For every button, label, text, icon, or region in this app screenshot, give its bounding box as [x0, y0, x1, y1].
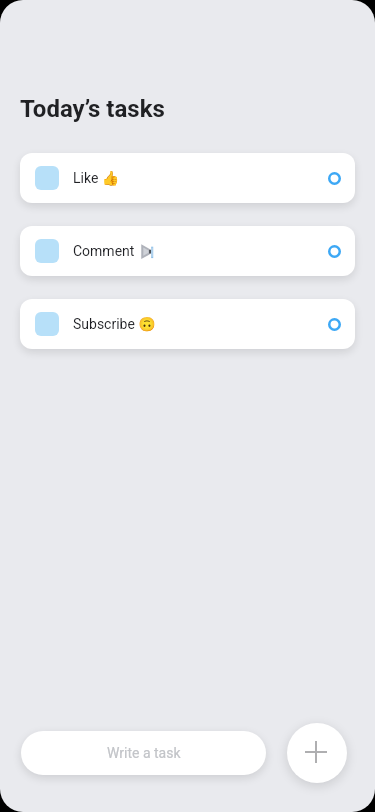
- staticText: Subscribe 🙃: [73, 316, 156, 332]
- button[interactable]: Add task: [287, 723, 347, 783]
- staticText: Today’s tasks: [20, 95, 165, 123]
- staticText: Comment: [73, 243, 135, 259]
- button[interactable]: Comment: [20, 226, 355, 276]
- button[interactable]: Subscribe 🙃: [20, 299, 355, 349]
- button[interactable]: Write a task: [21, 731, 266, 775]
- staticText: Like 👍: [73, 170, 120, 186]
- button[interactable]: Like 👍: [20, 153, 355, 203]
- staticText: Write a task: [107, 745, 181, 761]
